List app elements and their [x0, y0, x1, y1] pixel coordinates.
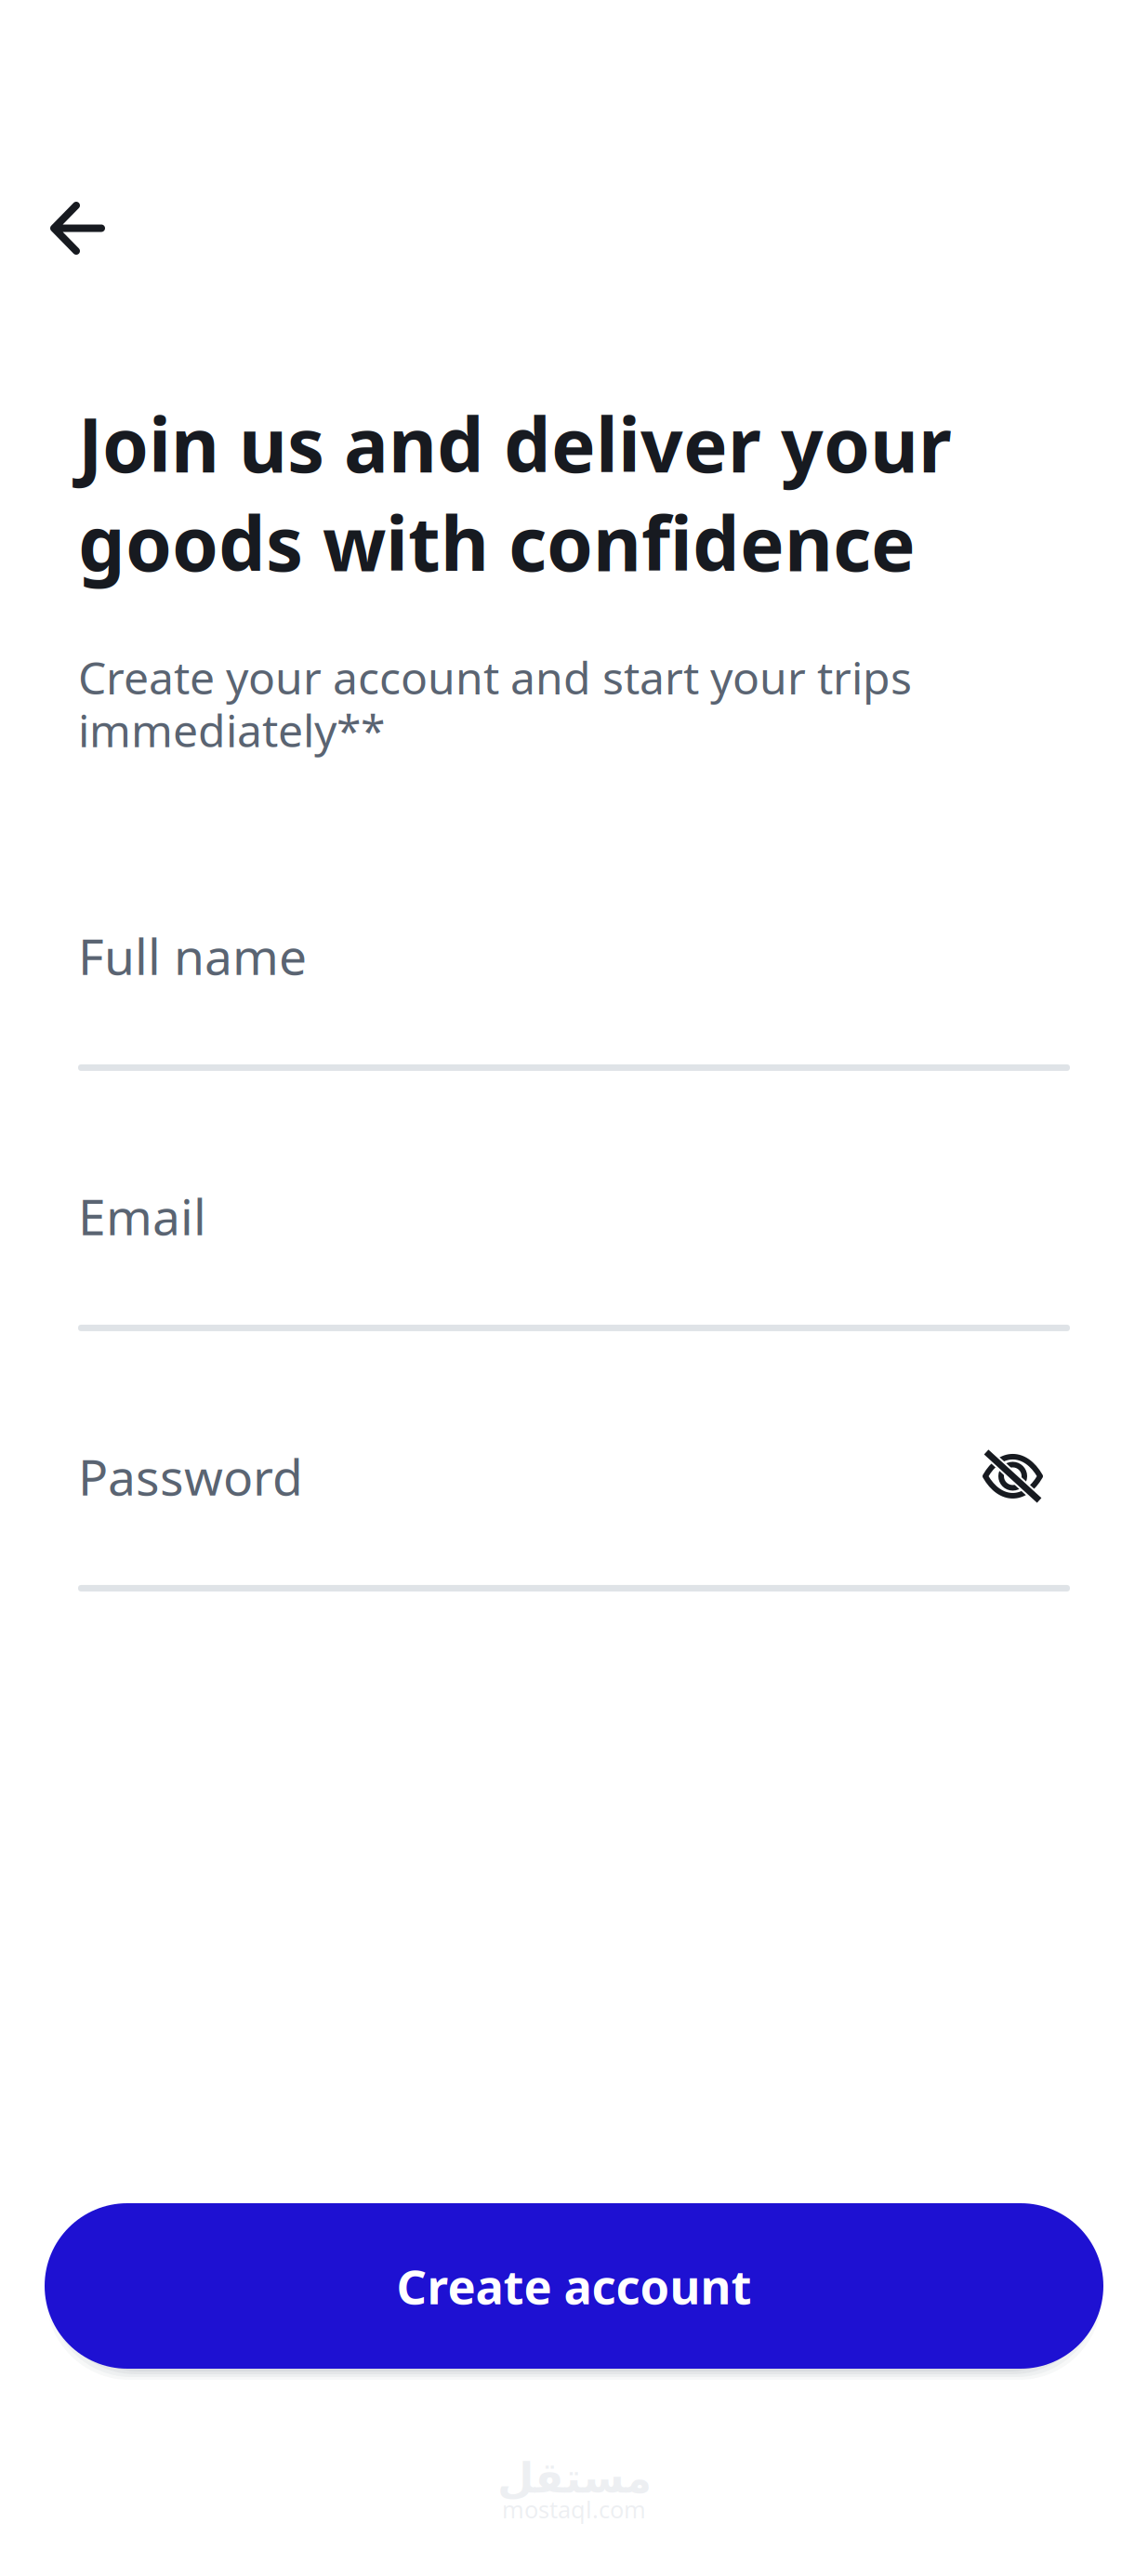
button[interactable]: Password	[78, 1446, 959, 1507]
button[interactable]: Back	[0, 183, 124, 273]
button[interactable]: Show password	[959, 1446, 1070, 1507]
staticText: Full name	[78, 923, 307, 988]
staticText: mostaql.com	[502, 2494, 646, 2525]
staticText: Email	[78, 1183, 206, 1249]
staticText: Create account	[396, 2255, 752, 2317]
staticText: Password	[78, 1443, 303, 1509]
staticText: Join us and deliver your goods with conf…	[78, 394, 952, 592]
staticText: Create your account and start your trips…	[78, 647, 912, 760]
staticText: مستقل	[497, 2454, 651, 2502]
button[interactable]: Full name	[78, 925, 1070, 986]
button[interactable]: Create account	[45, 2203, 1103, 2369]
button[interactable]: Email	[78, 1185, 1070, 1247]
